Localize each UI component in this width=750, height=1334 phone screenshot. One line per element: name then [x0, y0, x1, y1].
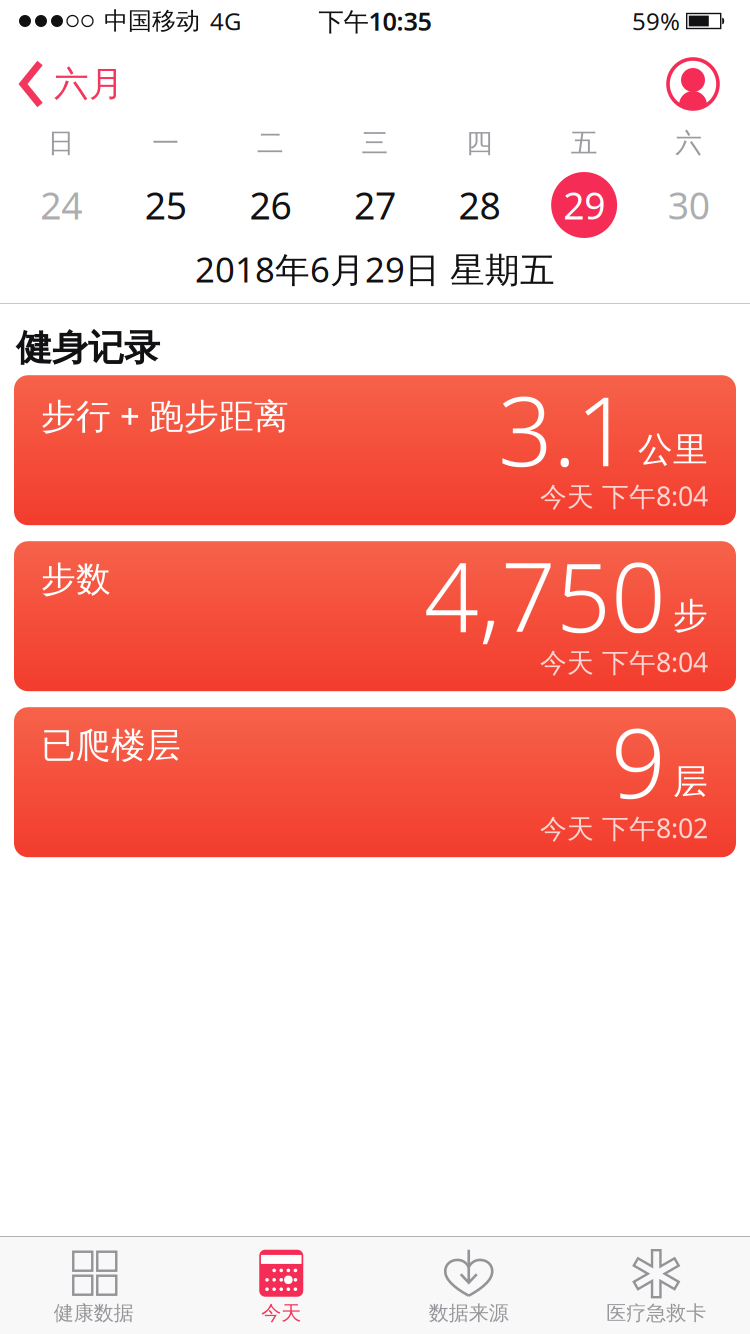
staticText: 4G	[210, 5, 241, 37]
staticText: 步	[673, 594, 708, 637]
staticText: 五	[571, 127, 598, 159]
button[interactable]: 6月24日	[9, 166, 114, 244]
button[interactable]: 数据来源	[375, 1246, 562, 1325]
button[interactable]: 6月25日	[114, 166, 218, 244]
staticText: 2018年6月29日 星期五	[195, 246, 555, 292]
staticText: 公里	[638, 428, 708, 471]
staticText: 29	[563, 180, 605, 230]
button[interactable]: 步数	[14, 541, 736, 691]
staticText: 健康数据	[54, 1301, 134, 1325]
staticText: 健身记录	[16, 326, 160, 370]
staticText: 六月	[54, 63, 124, 105]
staticText: 步行 + 跑步距离	[41, 392, 289, 438]
staticText: 24	[40, 180, 82, 230]
button[interactable]: 返回六月	[20, 61, 124, 107]
button[interactable]: 6月29日	[532, 166, 636, 244]
staticText: 四	[466, 127, 493, 159]
button[interactable]: 健康数据	[0, 1246, 187, 1325]
button[interactable]: 今天	[187, 1246, 375, 1325]
staticText: 三	[361, 127, 388, 159]
staticText: 中国移动	[104, 6, 200, 36]
button[interactable]: 6月26日	[218, 166, 323, 244]
staticText: 25	[145, 180, 187, 230]
staticText: 3.1	[498, 365, 631, 493]
staticText: 28	[459, 180, 501, 230]
button[interactable]: 步行 + 跑步距离	[14, 375, 736, 525]
button[interactable]: 医疗急救卡	[562, 1246, 750, 1325]
staticText: 今天 下午8:02	[540, 810, 708, 846]
staticText: 今天 下午8:04	[540, 478, 708, 514]
staticText: 26	[249, 180, 291, 230]
staticText: 已爬楼层	[41, 724, 181, 767]
staticText: 59%	[632, 5, 680, 37]
staticText: 数据来源	[429, 1301, 509, 1325]
button[interactable]: 已爬楼层	[14, 707, 736, 857]
staticText: 今天 下午8:04	[540, 644, 708, 680]
staticText: 9	[611, 697, 666, 825]
staticText: 30	[668, 180, 710, 230]
staticText: 层	[673, 760, 708, 803]
button[interactable]: 个人信息	[668, 59, 718, 109]
staticText: 下午10:35	[318, 4, 431, 38]
staticText: 六	[675, 127, 702, 159]
button[interactable]: 6月27日	[323, 166, 427, 244]
staticText: 27	[354, 180, 396, 230]
staticText: 医疗急救卡	[606, 1301, 706, 1325]
staticText: 一	[152, 127, 179, 159]
staticText: 今天	[261, 1301, 301, 1325]
staticText: 4,750	[424, 531, 666, 659]
button[interactable]: 6月28日	[427, 166, 532, 244]
staticText: 步数	[41, 558, 111, 601]
staticText: 日	[48, 127, 75, 159]
button[interactable]: 6月30日	[636, 166, 741, 244]
staticText: 二	[257, 127, 284, 159]
